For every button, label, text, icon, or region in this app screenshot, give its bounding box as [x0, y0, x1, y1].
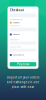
staticText: Saved cards [10, 25, 20, 27]
button[interactable]: Pay now [10, 62, 36, 66]
staticText: Pay now [17, 62, 29, 66]
staticText: Visa ···· 4242 [13, 34, 20, 35]
staticText: Security code [10, 46, 21, 48]
staticText: Import all your orders [7, 76, 39, 79]
staticText: Apple Pay [13, 22, 20, 24]
staticText: Expiry date [10, 39, 19, 41]
staticText: place with ease [11, 85, 34, 89]
staticText: Checkout [10, 8, 24, 12]
staticText: and exchanges in one [6, 80, 39, 84]
staticText: Save this card [13, 54, 24, 56]
staticText: Payment method [10, 19, 23, 20]
